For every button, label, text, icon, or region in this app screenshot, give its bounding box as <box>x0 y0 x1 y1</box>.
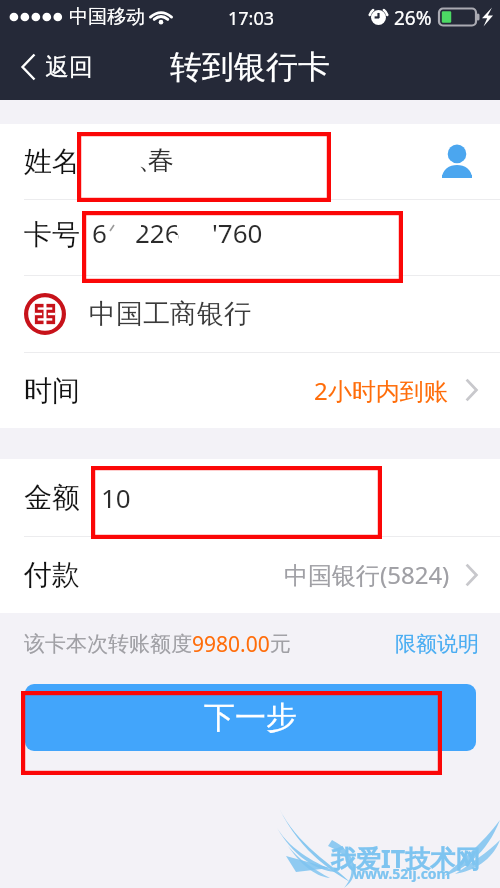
staticText: 姓名 <box>24 144 80 179</box>
button[interactable]: 选择联系人 <box>442 145 472 178</box>
staticText: 卡号 <box>24 217 80 252</box>
staticText: 返回 <box>45 52 93 82</box>
staticText: 、 <box>138 144 164 177</box>
staticText: 10 <box>101 480 131 515</box>
staticText: 金额 <box>24 480 80 515</box>
button[interactable]: 时间 <box>0 352 500 428</box>
staticText: 时间 <box>24 373 80 408</box>
staticText: 该卡本次转账额度 <box>24 631 192 657</box>
staticText: 2小时内到账 <box>314 374 448 407</box>
button[interactable]: 返回 <box>0 33 120 100</box>
staticText: 中国移动 <box>69 5 145 29</box>
staticText: 我爱IT技术网 <box>331 841 481 875</box>
staticText: 26% <box>394 5 432 31</box>
staticText: 中国银行(5824) <box>284 558 450 591</box>
staticText: 9980.00 <box>192 630 270 659</box>
staticText: 226 <box>135 215 180 250</box>
staticText: 转到银行卡 <box>170 47 330 87</box>
staticText: 春 <box>148 144 174 177</box>
button[interactable]: 卡号 <box>0 199 500 275</box>
staticText: 限额说明 <box>395 631 479 657</box>
staticText: 6 <box>92 215 107 250</box>
button[interactable]: 限额说明 <box>393 631 481 657</box>
staticText: 中国工商银行 <box>89 297 251 331</box>
staticText: 17:03 <box>228 6 275 31</box>
button[interactable]: 中国工商银行 <box>0 275 500 352</box>
other: Battery <box>439 8 495 26</box>
staticText: 付款 <box>24 557 80 592</box>
staticText: 下一步 <box>204 698 297 737</box>
staticText: '760 <box>212 215 263 250</box>
staticText: 元 <box>270 631 291 657</box>
other: Alarm <box>370 7 387 25</box>
button[interactable]: 下一步 <box>25 684 476 751</box>
staticText: www.52ij.com <box>353 864 451 883</box>
button[interactable]: 姓名 <box>0 124 500 199</box>
button[interactable]: 付款 <box>0 536 500 613</box>
button[interactable]: 金额 <box>0 459 500 536</box>
